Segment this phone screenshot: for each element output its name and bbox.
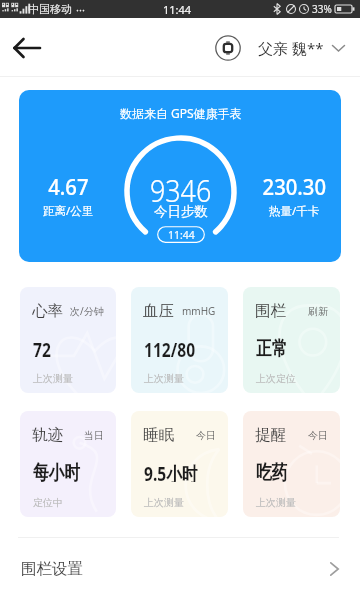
staticText: 提醒 bbox=[255, 425, 286, 445]
staticText: 围栏 bbox=[255, 301, 286, 321]
staticText: 72 bbox=[33, 336, 51, 358]
staticText: 距离/公里 bbox=[43, 203, 94, 219]
button[interactable]: 轨迹 bbox=[20, 411, 116, 517]
button[interactable]: 围栏设置 bbox=[0, 547, 360, 590]
staticText: 4.67 bbox=[48, 171, 89, 202]
staticText: 33% bbox=[312, 2, 332, 16]
staticText: 心率 bbox=[32, 301, 63, 321]
staticText: 吃药 bbox=[256, 460, 287, 482]
staticText: 父亲 魏** bbox=[258, 38, 324, 58]
button[interactable]: 心率 bbox=[20, 287, 116, 393]
button[interactable]: 睡眠 bbox=[131, 411, 228, 517]
staticText: 次/分钟 bbox=[70, 304, 104, 318]
staticText: 热量/千卡 bbox=[269, 203, 320, 219]
staticText: 当日 bbox=[84, 429, 104, 442]
staticText: mmHG bbox=[182, 304, 216, 318]
button[interactable]: 血压 bbox=[131, 287, 228, 393]
staticText: 数据来自 GPS健康手表 bbox=[120, 105, 242, 121]
staticText: 上次测量 bbox=[256, 496, 296, 509]
staticText: 11:44 bbox=[163, 2, 192, 17]
staticText: 正常 bbox=[256, 336, 287, 358]
staticText: 11:44 bbox=[168, 228, 195, 242]
staticText: 今日步数 bbox=[154, 203, 208, 220]
staticText: 血压 bbox=[143, 301, 174, 321]
staticText: 上次测量 bbox=[144, 496, 184, 509]
staticText: 睡眠 bbox=[143, 425, 174, 445]
staticText: 定位中 bbox=[33, 496, 63, 509]
button[interactable]: 父亲 魏** bbox=[215, 35, 346, 61]
button[interactable]: Back bbox=[10, 31, 44, 65]
staticText: 轨迹 bbox=[32, 425, 63, 445]
staticText: 上次定位 bbox=[256, 372, 296, 385]
button[interactable]: 围栏 bbox=[243, 287, 340, 393]
staticText: 9.5小时 bbox=[144, 460, 198, 482]
staticText: 刷新 bbox=[308, 305, 328, 318]
staticText: 围栏设置 bbox=[21, 559, 83, 579]
staticText: 上次测量 bbox=[144, 372, 184, 385]
staticText: ··· bbox=[76, 2, 85, 17]
button[interactable]: 提醒 bbox=[243, 411, 340, 517]
staticText: 今日 bbox=[196, 429, 216, 442]
staticText: 每小时 bbox=[33, 460, 80, 482]
staticText: 230.30 bbox=[262, 171, 326, 202]
button[interactable]: 数据来自 GPS健康手表 bbox=[19, 90, 341, 262]
staticText: 上次测量 bbox=[33, 372, 73, 385]
staticText: 今日 bbox=[308, 429, 328, 442]
staticText: 9346 bbox=[150, 168, 212, 212]
staticText: 112/80 bbox=[144, 336, 195, 358]
staticText: 中国移动 bbox=[28, 2, 72, 16]
